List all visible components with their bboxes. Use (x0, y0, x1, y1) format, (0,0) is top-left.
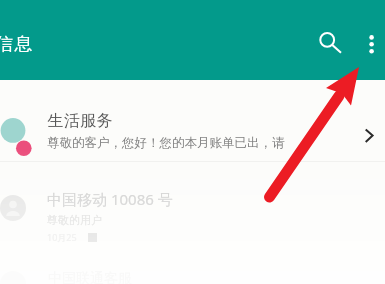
button[interactable]: More options (354, 20, 385, 56)
staticText: 尊敬的用户 (47, 213, 102, 227)
staticText: 10月25 (47, 231, 77, 243)
button[interactable]: Search (307, 20, 347, 60)
staticText: 中国移动 10086 号 (47, 189, 173, 209)
button[interactable]: 生活服务 (0, 96, 385, 162)
staticText: 信息 (0, 33, 35, 56)
button[interactable]: 中国移动 10086 号 (0, 180, 385, 254)
button[interactable]: Open conversation (356, 122, 382, 148)
staticText: 生活服务 (47, 111, 113, 131)
staticText: 尊敬的客户，您好！您的本月账单已出，请 (47, 135, 285, 151)
